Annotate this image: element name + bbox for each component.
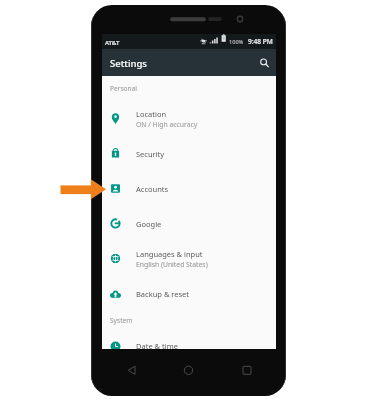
other: Arrow pointing at Accounts (60, 178, 107, 201)
staticText: Personal (110, 84, 138, 93)
staticText: System (110, 316, 133, 325)
staticText: Languages & input (136, 249, 203, 259)
staticText: Date & time (136, 341, 178, 349)
button[interactable]: Accounts (102, 171, 276, 206)
staticText: Location (136, 109, 167, 119)
staticText: ON / High accuracy (136, 120, 198, 129)
staticText: Backup & reset (136, 289, 190, 299)
button[interactable]: Languages & input (102, 241, 276, 276)
button[interactable]: Google (102, 206, 276, 241)
button[interactable]: Search (255, 54, 273, 72)
button[interactable]: Security (102, 136, 276, 171)
staticText: 9:48 PM (248, 37, 273, 46)
staticText: Accounts (136, 184, 169, 194)
staticText: 100% (229, 38, 244, 46)
staticText: AT&T (105, 38, 120, 46)
button[interactable]: Location (102, 101, 276, 136)
button[interactable]: Backup & reset (102, 276, 276, 311)
staticText: Security (136, 149, 165, 159)
staticText: Google (136, 219, 162, 229)
staticText: Settings (110, 57, 147, 70)
staticText: English (United States) (136, 260, 208, 269)
button[interactable]: Date & time (102, 333, 276, 349)
